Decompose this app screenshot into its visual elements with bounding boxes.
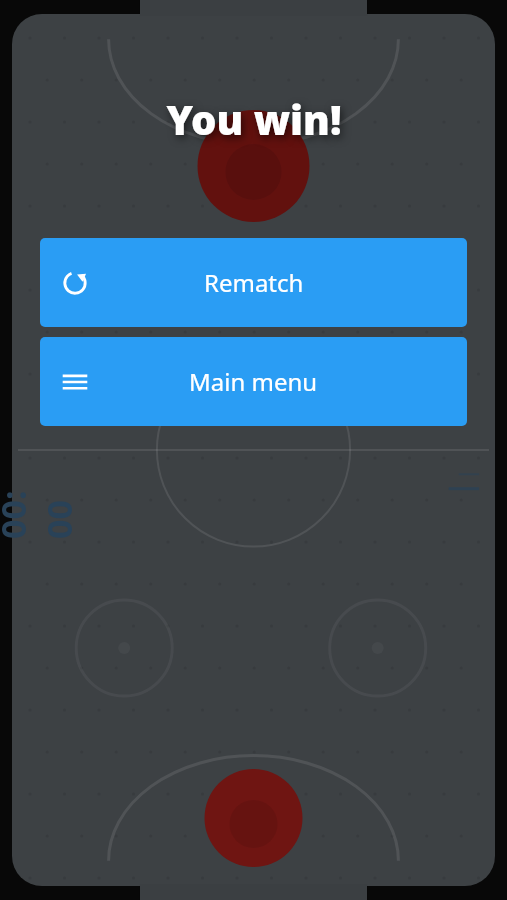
other: Rematch bbox=[60, 268, 90, 298]
staticText: Rematch bbox=[204, 266, 304, 299]
button[interactable]: Rematch bbox=[40, 238, 467, 327]
other: Main menu bbox=[60, 367, 90, 397]
staticText: You win! bbox=[166, 92, 342, 146]
button[interactable]: Main menu bbox=[40, 337, 467, 426]
staticText: 00:00 bbox=[0, 475, 82, 539]
staticText: Main menu bbox=[189, 365, 318, 398]
